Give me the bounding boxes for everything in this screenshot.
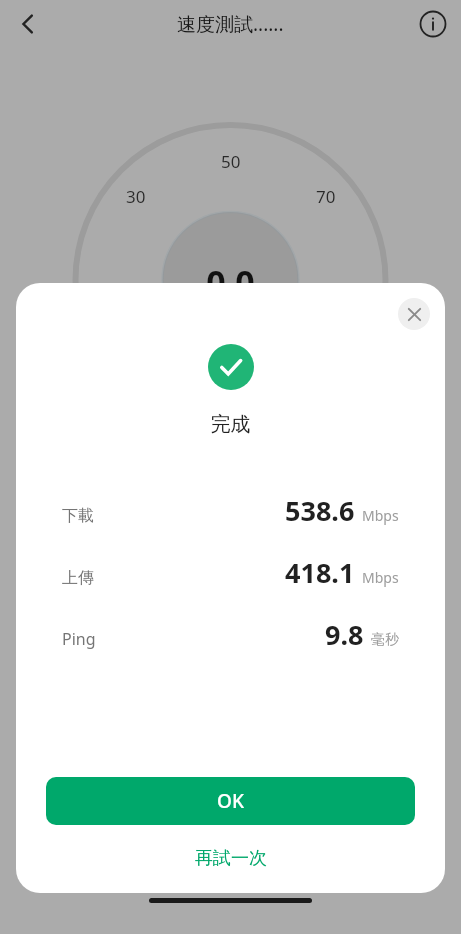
- button[interactable]: 再試一次: [16, 825, 445, 891]
- button[interactable]: OK: [46, 777, 415, 825]
- staticText: 418.1: [285, 554, 355, 591]
- staticText: 50: [221, 150, 241, 173]
- staticText: 速度測試......: [177, 11, 284, 37]
- staticText: 30: [126, 185, 146, 208]
- staticText: 9.8: [325, 616, 364, 653]
- staticText: 10: [87, 278, 107, 301]
- staticText: 毫秒: [371, 631, 399, 649]
- staticText: 完成: [16, 412, 445, 437]
- staticText: Ping: [62, 628, 96, 650]
- staticText: 90: [355, 278, 375, 301]
- button[interactable]: Close: [398, 298, 430, 330]
- staticText: 538.6: [285, 492, 355, 529]
- staticText: 下載: [62, 506, 94, 526]
- staticText: 再試一次: [195, 847, 267, 870]
- button[interactable]: Back: [8, 4, 48, 44]
- staticText: 上傳: [62, 568, 94, 588]
- staticText: OK: [217, 788, 244, 814]
- staticText: Mbps: [362, 568, 399, 587]
- staticText: 0.0: [0, 259, 461, 305]
- staticText: 70: [316, 185, 336, 208]
- staticText: Mbps: [362, 506, 399, 525]
- button[interactable]: Information: [413, 4, 453, 44]
